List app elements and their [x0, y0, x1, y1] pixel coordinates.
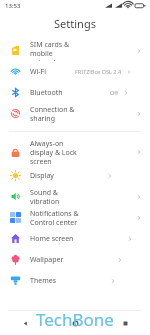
staticText: FRITZ!Box DSL 2.4	[75, 68, 122, 75]
staticText: SIM cards & mobile networks	[30, 40, 83, 61]
staticText: Display	[30, 171, 54, 181]
button[interactable]: SIM cards & mobile networks	[0, 40, 150, 61]
staticText: 13:53	[5, 2, 21, 10]
button[interactable]: Notifications & Control center	[0, 207, 150, 228]
staticText: TechBone	[36, 308, 114, 331]
button[interactable]: Sound & vibration	[0, 186, 150, 207]
button[interactable]: Recent apps	[100, 311, 150, 335]
button[interactable]: Wi-Fi	[0, 61, 150, 82]
button[interactable]: Connection & sharing	[0, 103, 150, 124]
button[interactable]: Themes	[0, 270, 150, 291]
button[interactable]: Always-on display & Lock screen	[0, 139, 150, 165]
staticText: Themes	[30, 276, 57, 286]
staticText: Connection & sharing	[30, 105, 83, 123]
staticText: Bluetooth	[30, 88, 63, 98]
staticText: Wi-Fi	[30, 67, 47, 77]
button[interactable]: Home screen	[0, 228, 150, 249]
button[interactable]: Back	[0, 311, 50, 335]
staticText: Sound & vibration	[30, 188, 83, 206]
button[interactable]: Wallpaper	[0, 249, 150, 270]
staticText: Settings	[54, 16, 96, 31]
button[interactable]: Bluetooth	[0, 82, 150, 103]
staticText: Off	[110, 89, 119, 96]
button[interactable]: Home	[50, 311, 100, 335]
staticText: Home screen	[30, 234, 74, 244]
staticText: Wallpaper	[30, 255, 64, 265]
staticText: Always-on display & Lock screen	[30, 139, 83, 165]
staticText: Notifications & Control center	[30, 209, 83, 227]
button[interactable]: Display	[0, 165, 150, 186]
